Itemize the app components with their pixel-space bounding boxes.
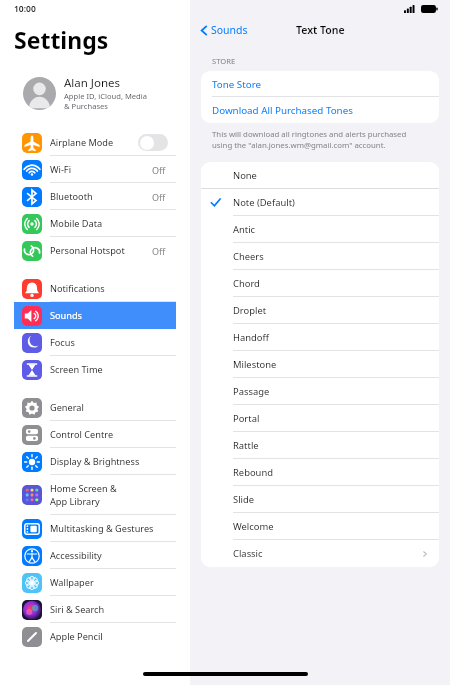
staticText: Screen Time — [50, 363, 103, 376]
staticText: Chord — [233, 277, 429, 290]
button[interactable]: Focus — [14, 329, 176, 356]
button[interactable]: Siri & Search — [14, 596, 176, 623]
button[interactable]: None — [201, 162, 439, 189]
button[interactable]: Chord — [201, 270, 439, 297]
staticText: Notifications — [50, 282, 105, 295]
button[interactable]: Rattle — [201, 432, 439, 459]
staticText: Siri & Search — [50, 603, 105, 616]
button[interactable]: Airplane Mode toggle — [138, 134, 168, 151]
staticText: Sounds — [211, 23, 248, 37]
button[interactable]: Display & Brightness — [14, 448, 176, 475]
staticText: Wallpaper — [50, 576, 94, 589]
staticText: Alan Jones — [64, 75, 121, 91]
button[interactable]: Multitasking & Gestures — [14, 515, 176, 542]
button[interactable]: General — [14, 394, 176, 421]
staticText: Apple ID, iCloud, Media — [64, 91, 147, 101]
staticText: Display & Brightness — [50, 455, 140, 468]
staticText: Off — [152, 245, 166, 257]
button[interactable]: Note (Default) — [201, 189, 439, 216]
staticText: Handoff — [233, 331, 429, 344]
button[interactable]: Cheers — [201, 243, 439, 270]
staticText: 10:00 — [14, 3, 36, 15]
button[interactable]: Notifications — [14, 275, 176, 302]
button[interactable]: Wi-Fi — [14, 156, 176, 183]
button[interactable]: Classic — [201, 540, 439, 567]
staticText: Personal Hotspot — [50, 244, 125, 257]
staticText: Rattle — [233, 439, 429, 452]
staticText: Sounds — [50, 309, 83, 322]
staticText: Mobile Data — [50, 217, 103, 230]
staticText: Passage — [233, 385, 429, 398]
staticText: Note (Default) — [233, 196, 429, 209]
button[interactable]: Apple Pencil — [14, 623, 176, 650]
staticText: Apple Pencil — [50, 630, 103, 643]
staticText: Tone Store — [212, 78, 262, 91]
button[interactable]: Droplet — [201, 297, 439, 324]
staticText: Cheers — [233, 250, 429, 263]
staticText: General — [50, 401, 84, 414]
button[interactable]: Screen Time — [14, 356, 176, 383]
button[interactable]: Welcome — [201, 513, 439, 540]
staticText: Milestone — [233, 358, 429, 371]
staticText: Classic — [233, 547, 421, 560]
button[interactable]: Home Screen & — [14, 475, 176, 515]
button[interactable]: Handoff — [201, 324, 439, 351]
button[interactable]: Milestone — [201, 351, 439, 378]
staticText: Wi-Fi — [50, 163, 72, 176]
button[interactable]: Control Centre — [14, 421, 176, 448]
button[interactable]: Tone Store — [201, 71, 439, 97]
staticText: & Purchases — [64, 101, 108, 111]
staticText: Bluetooth — [50, 190, 93, 203]
button[interactable]: Mobile Data — [14, 210, 176, 237]
staticText: Focus — [50, 336, 75, 349]
button[interactable]: Bluetooth — [14, 183, 176, 210]
staticText: Antic — [233, 223, 429, 236]
button[interactable]: Portal — [201, 405, 439, 432]
button[interactable]: Personal Hotspot — [14, 237, 176, 264]
staticText: Welcome — [233, 520, 429, 533]
button[interactable]: Antic — [201, 216, 439, 243]
button[interactable]: Wallpaper — [14, 569, 176, 596]
button[interactable]: Sounds — [14, 302, 176, 329]
button[interactable]: Download All Purchased Tones — [201, 97, 439, 123]
staticText: This will download all ringtones and ale… — [212, 129, 407, 151]
button[interactable]: Passage — [201, 378, 439, 405]
staticText: Accessibility — [50, 549, 102, 562]
staticText: Airplane Mode — [50, 136, 114, 149]
staticText: Download All Purchased Tones — [212, 104, 353, 117]
staticText: Control Centre — [50, 428, 114, 441]
button[interactable]: Accessibility — [14, 542, 176, 569]
button[interactable]: Rebound — [201, 459, 439, 486]
button[interactable]: Alan Jones — [14, 68, 176, 118]
staticText: None — [233, 169, 429, 182]
staticText: Settings — [14, 24, 109, 55]
staticText: Slide — [233, 493, 429, 506]
button[interactable]: Sounds — [198, 21, 250, 39]
staticText: Rebound — [233, 466, 429, 479]
staticText: Droplet — [233, 304, 429, 317]
staticText: Multitasking & Gestures — [50, 522, 154, 535]
button[interactable]: Airplane Mode — [14, 129, 176, 156]
staticText: Off — [152, 191, 166, 203]
button[interactable]: Slide — [201, 486, 439, 513]
staticText: Off — [152, 164, 166, 176]
staticText: STORE — [212, 56, 236, 66]
staticText: Text Tone — [296, 23, 345, 37]
staticText: Home Screen & — [50, 482, 117, 495]
staticText: App Library — [50, 495, 100, 508]
staticText: Portal — [233, 412, 429, 425]
